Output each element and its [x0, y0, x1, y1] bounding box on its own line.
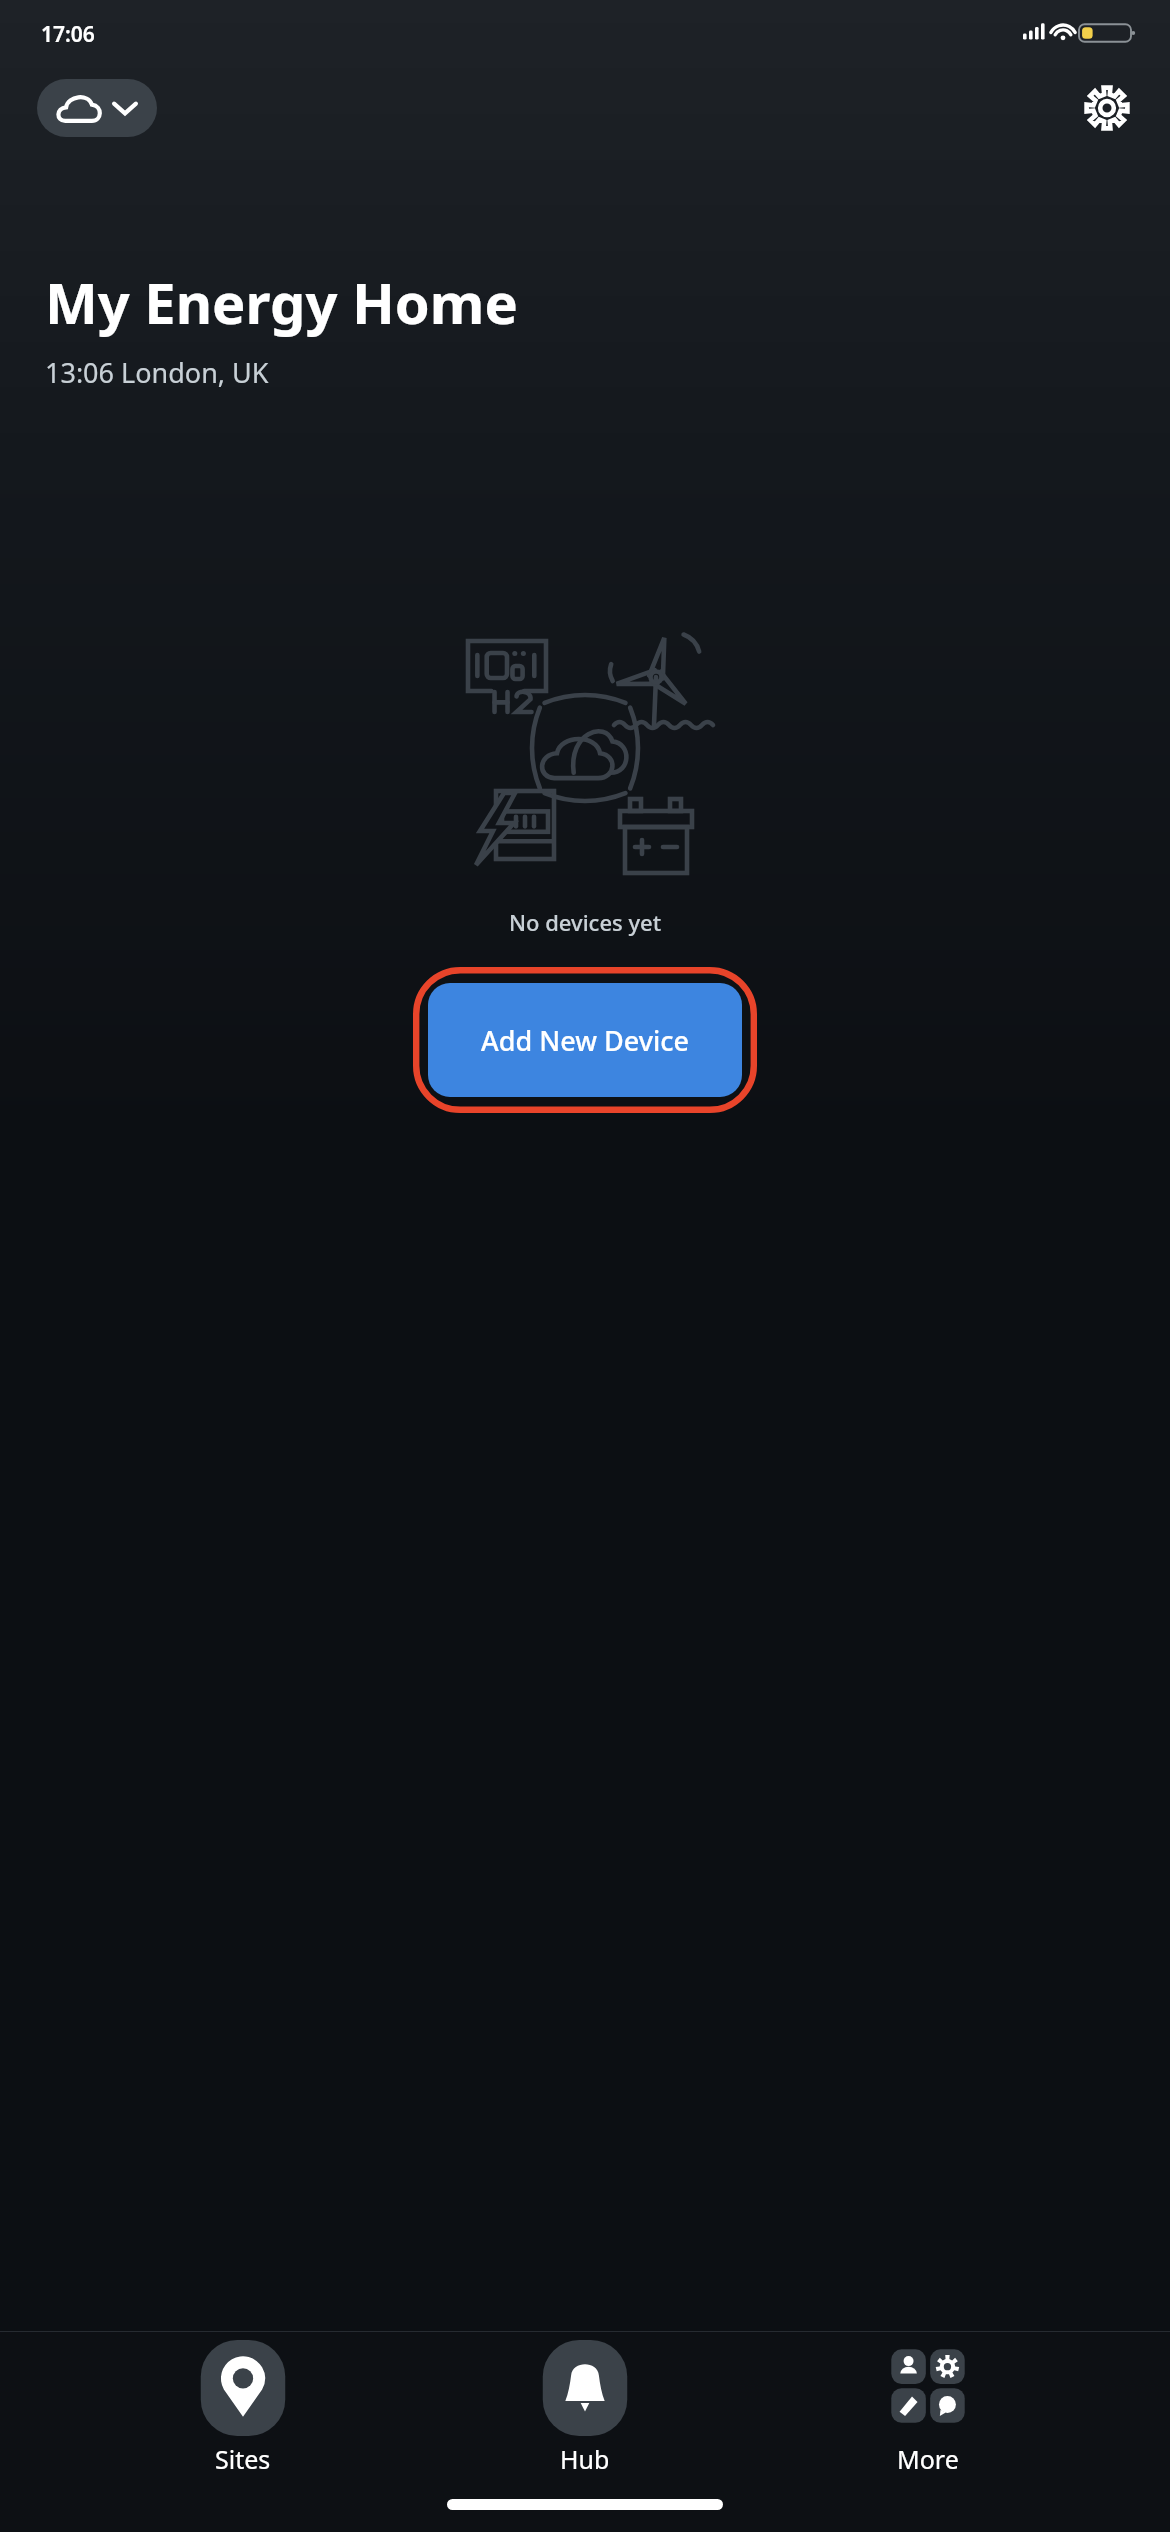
button[interactable]: Hub — [485, 2334, 685, 2482]
staticText: 17:06 — [41, 20, 95, 49]
button[interactable]: Select cloud connection — [37, 79, 157, 137]
staticText: Add New Device — [481, 1022, 689, 1059]
staticText: More — [897, 2442, 959, 2476]
button[interactable]: More — [828, 2334, 1028, 2482]
button[interactable]: Settings — [1077, 78, 1137, 138]
staticText: Hub — [560, 2442, 610, 2476]
button[interactable]: Add New Device — [413, 967, 757, 1113]
button[interactable]: Sites — [143, 2334, 343, 2482]
staticText: 13:06 London, UK — [45, 354, 269, 391]
staticText: No devices yet — [509, 907, 662, 937]
staticText: My Energy Home — [45, 264, 518, 340]
staticText: Sites — [215, 2442, 271, 2476]
